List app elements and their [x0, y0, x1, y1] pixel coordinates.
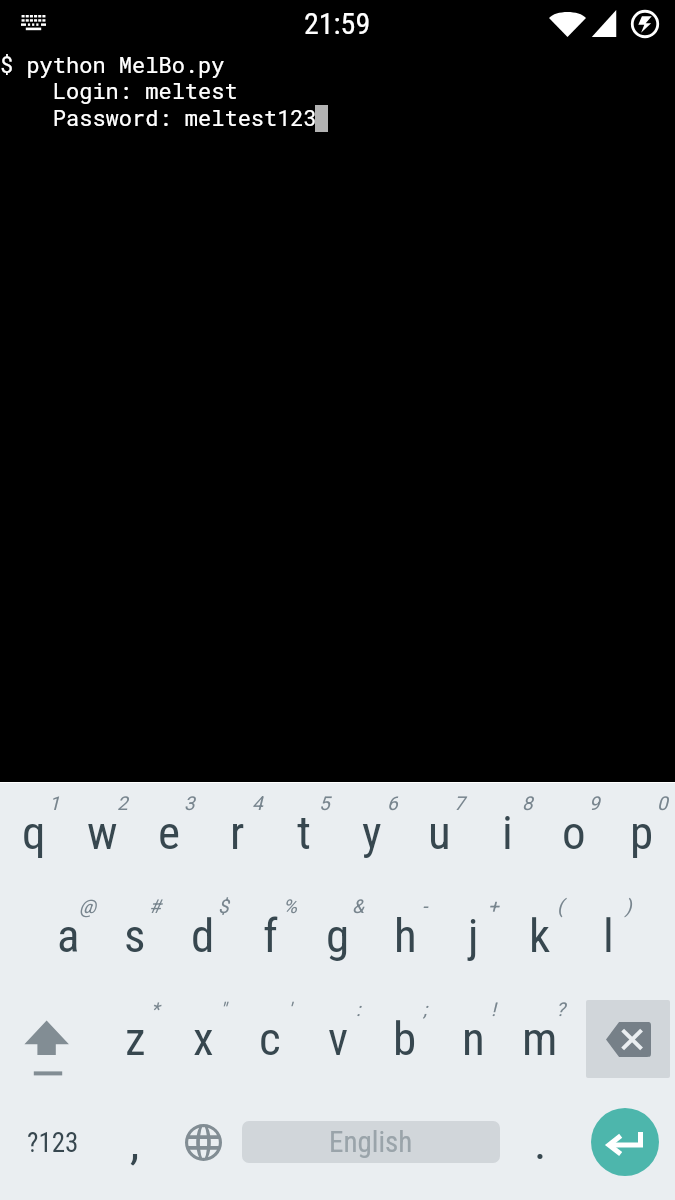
staticText: 6	[387, 792, 398, 814]
button[interactable]: .	[506, 1092, 574, 1192]
staticText: $ python MelBo.py	[0, 50, 225, 79]
staticText: r	[230, 805, 245, 860]
button[interactable]: "	[169, 989, 237, 1092]
button[interactable]: $	[169, 886, 237, 989]
staticText: e	[158, 805, 181, 860]
staticText: 2	[117, 792, 128, 814]
staticText: k	[529, 908, 551, 963]
staticText: x	[193, 1011, 214, 1066]
button[interactable]: 6	[338, 783, 406, 886]
staticText: #	[149, 895, 161, 917]
button[interactable]: :	[304, 989, 372, 1092]
staticText: 7	[454, 792, 465, 814]
button[interactable]: -	[371, 886, 439, 989]
button[interactable]: Enter	[574, 1092, 675, 1192]
button[interactable]: ?	[506, 989, 574, 1092]
button[interactable]: 1	[0, 783, 68, 886]
staticText: 21:59	[304, 6, 371, 41]
staticText: p	[630, 805, 654, 860]
staticText: ,	[130, 1115, 140, 1170]
staticText: -	[422, 895, 428, 917]
staticText: 8	[522, 792, 533, 814]
staticText: .	[534, 1115, 547, 1170]
button[interactable]: +	[439, 886, 507, 989]
button[interactable]: (	[506, 886, 574, 989]
staticText: '	[288, 998, 292, 1020]
staticText: 1	[49, 792, 60, 814]
staticText: ;	[423, 998, 428, 1020]
staticText: y	[362, 805, 382, 860]
button[interactable]: 7	[405, 783, 473, 886]
staticText: b	[393, 1011, 417, 1066]
button[interactable]: English	[236, 1092, 506, 1192]
button[interactable]: *	[101, 989, 169, 1092]
staticText: Login: meltest	[0, 76, 238, 105]
button[interactable]: 4	[203, 783, 271, 886]
staticText: @	[79, 895, 97, 917]
button[interactable]: '	[236, 989, 304, 1092]
button[interactable]: ,	[101, 1092, 169, 1192]
staticText: 3	[184, 792, 195, 814]
staticText: c	[259, 1011, 281, 1066]
staticText: !	[491, 998, 496, 1020]
staticText: English	[329, 1125, 413, 1159]
button[interactable]: ;	[371, 989, 439, 1092]
staticText: $	[218, 895, 229, 917]
button[interactable]: 0	[608, 783, 675, 886]
staticText: )	[625, 895, 632, 917]
staticText: m	[522, 1011, 558, 1066]
staticText: a	[57, 908, 80, 963]
button[interactable]: Change language	[169, 1092, 237, 1192]
staticText: %	[283, 895, 297, 917]
staticText: &	[352, 895, 364, 917]
button[interactable]: 3	[135, 783, 203, 886]
staticText: w	[87, 805, 118, 860]
staticText: v	[328, 1011, 349, 1066]
button[interactable]: 8	[473, 783, 541, 886]
staticText: Password: meltest123	[0, 103, 317, 132]
staticText: s	[124, 908, 146, 963]
staticText: d	[191, 908, 215, 963]
staticText: ?123	[27, 1127, 79, 1159]
staticText: "	[220, 998, 227, 1020]
button[interactable]: %	[236, 886, 304, 989]
staticText: ?	[556, 998, 565, 1020]
staticText: z	[125, 1011, 146, 1066]
staticText: h	[394, 908, 417, 963]
staticText: *	[151, 998, 160, 1020]
staticText: l	[603, 908, 614, 963]
staticText: f	[263, 908, 278, 963]
button[interactable]: Backspace	[574, 989, 675, 1092]
staticText: q	[22, 805, 46, 860]
button[interactable]: &	[304, 886, 372, 989]
staticText: o	[562, 805, 586, 860]
button[interactable]: !	[439, 989, 507, 1092]
staticText: t	[297, 805, 311, 860]
staticText: i	[502, 805, 513, 860]
staticText: (	[557, 895, 564, 917]
staticText: j	[468, 908, 479, 963]
staticText: 4	[252, 792, 263, 814]
staticText: 5	[319, 792, 330, 814]
staticText: :	[356, 998, 361, 1020]
button[interactable]: @	[34, 886, 102, 989]
staticText: 0	[657, 792, 668, 814]
button[interactable]: #	[101, 886, 169, 989]
button[interactable]: 9	[540, 783, 608, 886]
staticText: u	[428, 805, 451, 860]
staticText: +	[488, 895, 499, 917]
button[interactable]: ?123	[0, 1092, 101, 1192]
button[interactable]: )	[574, 886, 642, 989]
button[interactable]: Shift	[0, 989, 101, 1092]
other: Keyboard	[21, 15, 46, 30]
staticText: n	[462, 1011, 485, 1066]
button[interactable]: 2	[68, 783, 136, 886]
staticText: g	[326, 908, 350, 963]
button[interactable]: 5	[270, 783, 338, 886]
staticText: 9	[589, 792, 600, 814]
